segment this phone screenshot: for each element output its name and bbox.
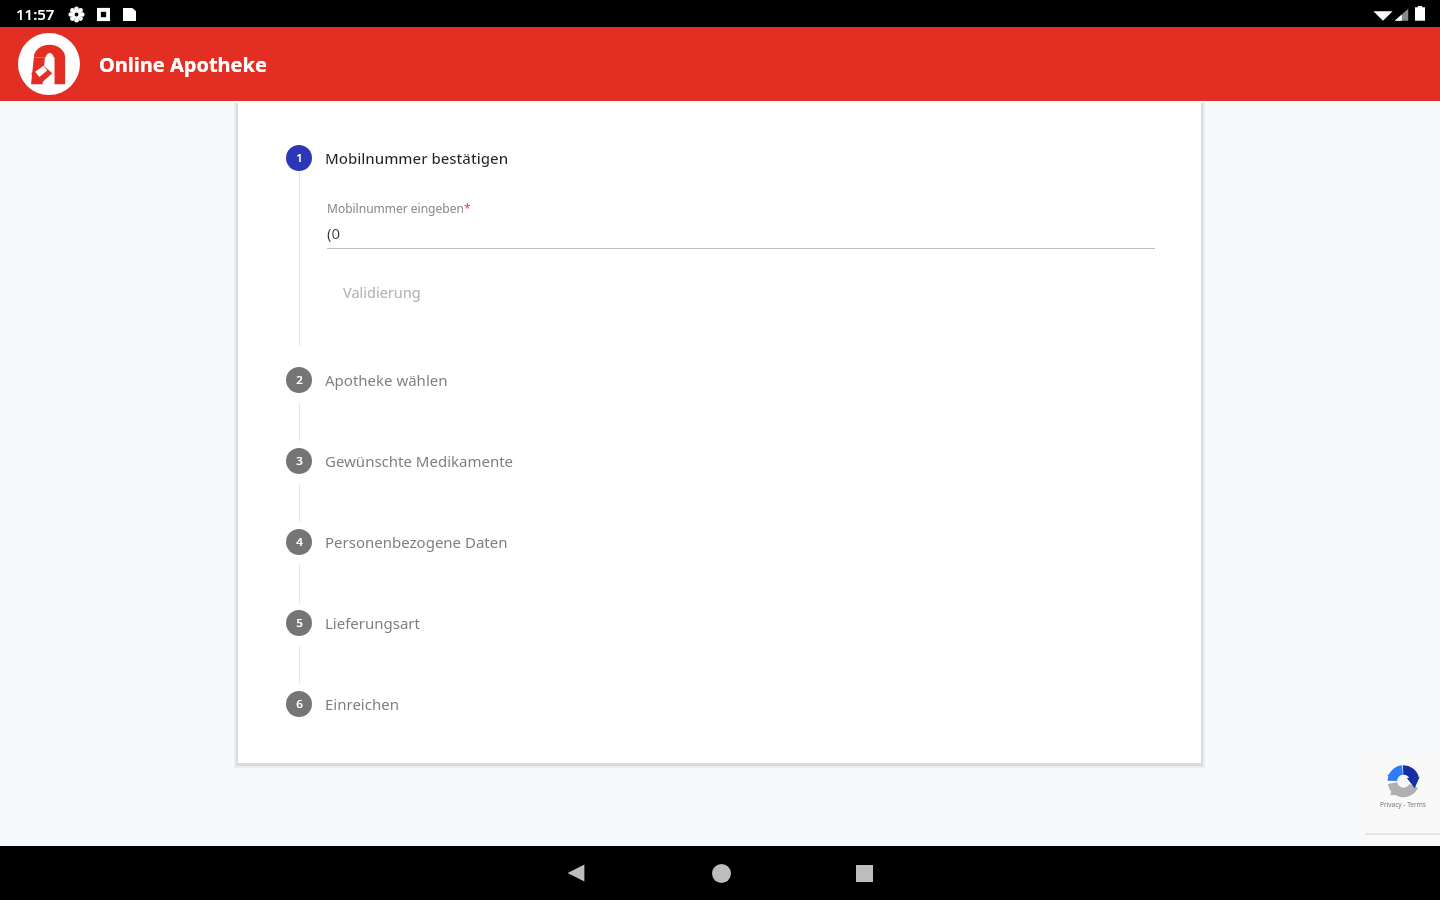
button[interactable]: 2 — [286, 367, 448, 393]
staticText: Mobilnummer eingeben — [327, 200, 464, 216]
staticText: 4 — [296, 534, 303, 550]
staticText: Personenbezogene Daten — [325, 532, 508, 552]
staticText: (0 — [327, 223, 341, 243]
staticText: 6 — [296, 696, 303, 712]
button[interactable]: 6 — [286, 691, 399, 717]
button[interactable]: Validierung — [343, 282, 421, 302]
staticText: Gewünschte Medikamente — [325, 451, 514, 471]
button[interactable]: Home — [697, 849, 745, 897]
staticText: 2 — [296, 372, 303, 388]
staticText: Apotheke wählen — [325, 370, 448, 390]
button[interactable]: reCAPTCHA — [1364, 758, 1440, 833]
staticText: 1 — [296, 150, 303, 166]
staticText: 11:57 — [16, 4, 55, 24]
staticText: 5 — [296, 615, 303, 631]
staticText: 3 — [296, 453, 303, 469]
staticText: Einreichen — [325, 694, 399, 714]
staticText: * — [464, 200, 471, 216]
staticText: Online Apotheke — [99, 51, 267, 78]
staticText: Privacy - Terms — [1380, 800, 1426, 809]
button[interactable]: Back — [552, 849, 600, 897]
staticText: Mobilnummer bestätigen — [325, 148, 509, 168]
button[interactable]: 3 — [286, 448, 514, 474]
staticText: Validierung — [343, 282, 421, 302]
button[interactable]: 5 — [286, 610, 420, 636]
button[interactable]: 1 — [286, 145, 509, 171]
button[interactable]: Recents — [840, 849, 888, 897]
button[interactable]: 4 — [286, 529, 508, 555]
staticText: Lieferungsart — [325, 613, 420, 633]
button[interactable]: Apotheke Logo — [18, 33, 80, 95]
